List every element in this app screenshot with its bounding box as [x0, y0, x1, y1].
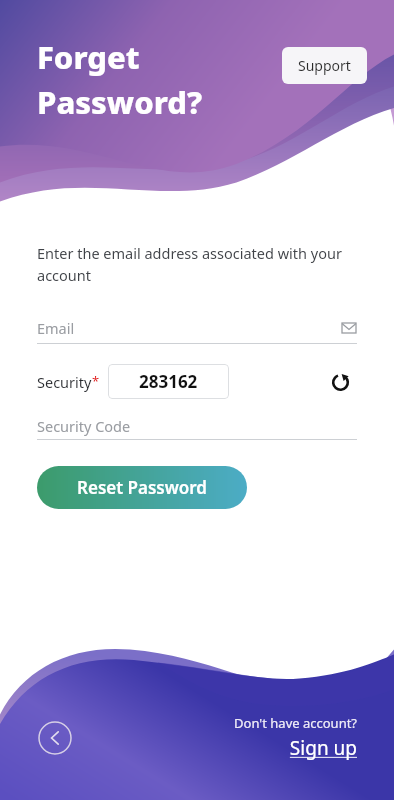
staticText: 283162 — [139, 370, 198, 393]
button[interactable]: Back — [38, 721, 72, 755]
button[interactable]: Support — [282, 47, 367, 84]
staticText: Forget Password? — [37, 36, 203, 123]
button[interactable]: Don't have account? — [0, 714, 357, 761]
staticText: Support — [298, 56, 351, 75]
staticText: Sign up — [289, 735, 357, 761]
staticText: Enter the email address associated with … — [37, 243, 357, 285]
button[interactable]: Reset Password — [37, 466, 247, 509]
button[interactable]: Security Code — [37, 413, 357, 439]
staticText: * — [92, 372, 100, 390]
staticText: Security Code — [37, 416, 131, 436]
staticText: Security — [37, 372, 92, 392]
button[interactable]: Refresh security code — [323, 365, 357, 399]
button[interactable]: Email — [37, 313, 357, 343]
staticText: Email — [37, 318, 75, 338]
staticText: Don't have account? — [234, 714, 357, 732]
staticText: Reset Password — [77, 476, 207, 499]
